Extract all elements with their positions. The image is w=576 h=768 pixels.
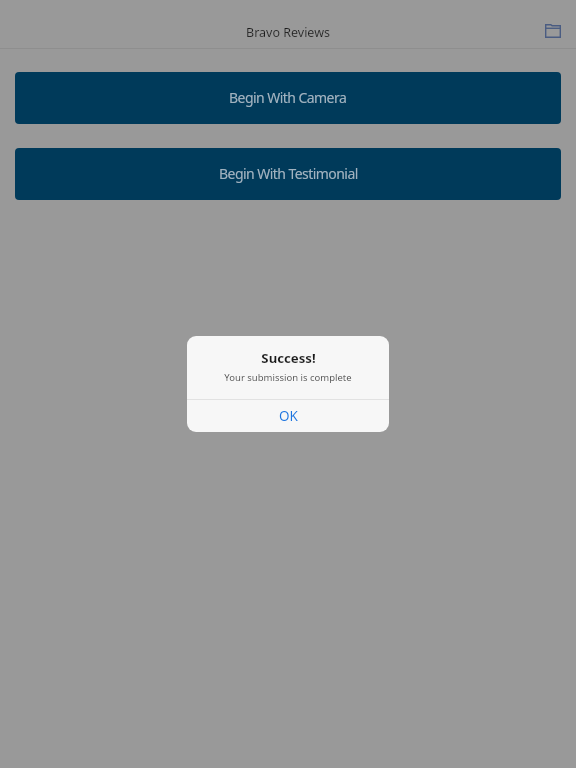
staticText: Begin With Camera — [229, 88, 347, 107]
staticText: Success! — [261, 349, 316, 367]
button[interactable]: Open folder — [535, 13, 571, 49]
staticText: OK — [279, 407, 298, 425]
staticText: Your submission is complete — [224, 371, 352, 384]
button[interactable]: OK — [187, 400, 389, 432]
button[interactable]: Begin With Camera — [15, 72, 561, 124]
staticText: Begin With Testimonial — [219, 164, 358, 183]
button[interactable]: Begin With Testimonial — [15, 148, 561, 200]
staticText: Bravo Reviews — [246, 24, 330, 41]
